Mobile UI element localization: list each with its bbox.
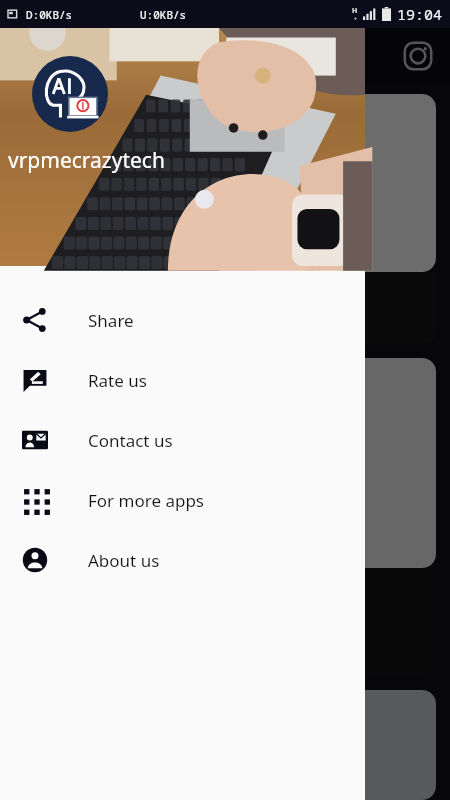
staticText: Learn AI the easy way. bbox=[30, 296, 232, 321]
other: Contact us bbox=[22, 427, 48, 453]
button[interactable] bbox=[14, 358, 436, 568]
button[interactable] bbox=[14, 690, 436, 800]
other: About us bbox=[22, 547, 48, 573]
staticText: Contact us bbox=[88, 429, 173, 452]
other: For more apps bbox=[22, 487, 48, 513]
button[interactable]: For more apps bbox=[0, 470, 365, 530]
staticText: For more apps bbox=[88, 489, 205, 512]
staticText: H bbox=[352, 6, 358, 16]
staticText: Rate us bbox=[88, 369, 147, 392]
button[interactable]: Rate us bbox=[0, 350, 365, 410]
button[interactable]: About us bbox=[0, 530, 365, 590]
other: Share bbox=[22, 307, 48, 333]
staticText: + bbox=[354, 16, 357, 23]
button[interactable]: Learn AI the easy way. bbox=[14, 272, 436, 344]
staticText: About us bbox=[88, 549, 160, 572]
staticText: vrpmecrazytech bbox=[8, 146, 165, 175]
staticText: 19:04 bbox=[397, 4, 443, 24]
button[interactable]: Contact us bbox=[0, 410, 365, 470]
staticText: D:0KB/s bbox=[26, 7, 73, 22]
staticText: Share bbox=[88, 309, 134, 332]
button[interactable] bbox=[14, 568, 436, 678]
staticText: Machine Learning with Python bbox=[30, 234, 259, 256]
other: Rate us bbox=[22, 367, 48, 393]
button[interactable]: Instagram bbox=[398, 36, 438, 76]
button[interactable]: Machine Learning with Python bbox=[14, 94, 436, 272]
staticText: U:0KB/s bbox=[140, 7, 187, 22]
button[interactable]: Share bbox=[0, 290, 365, 350]
